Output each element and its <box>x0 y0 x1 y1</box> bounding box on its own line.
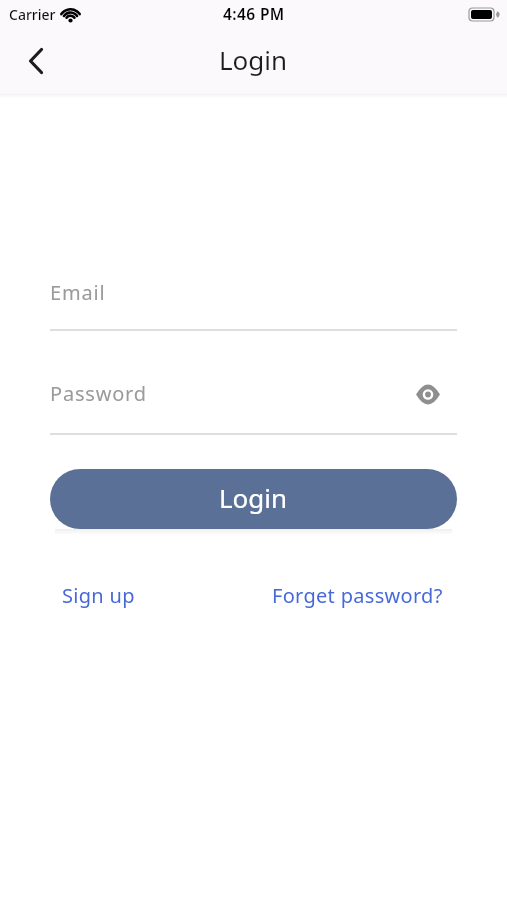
staticText: Forget password? <box>272 582 443 609</box>
staticText: Login <box>219 480 288 515</box>
button[interactable]: Login <box>50 469 457 529</box>
staticText: Login <box>219 42 288 77</box>
staticText: Email <box>50 279 106 306</box>
staticText: Password <box>50 380 147 407</box>
staticText: Sign up <box>62 582 135 609</box>
staticText: 4:46 PM <box>223 3 285 24</box>
button[interactable]: Email <box>50 262 457 331</box>
button[interactable] <box>409 375 447 413</box>
button[interactable]: Sign up <box>62 582 135 609</box>
button[interactable] <box>16 41 56 81</box>
button[interactable]: Forget password? <box>272 582 443 609</box>
button[interactable]: Password <box>50 366 457 435</box>
staticText: Carrier <box>9 5 56 24</box>
